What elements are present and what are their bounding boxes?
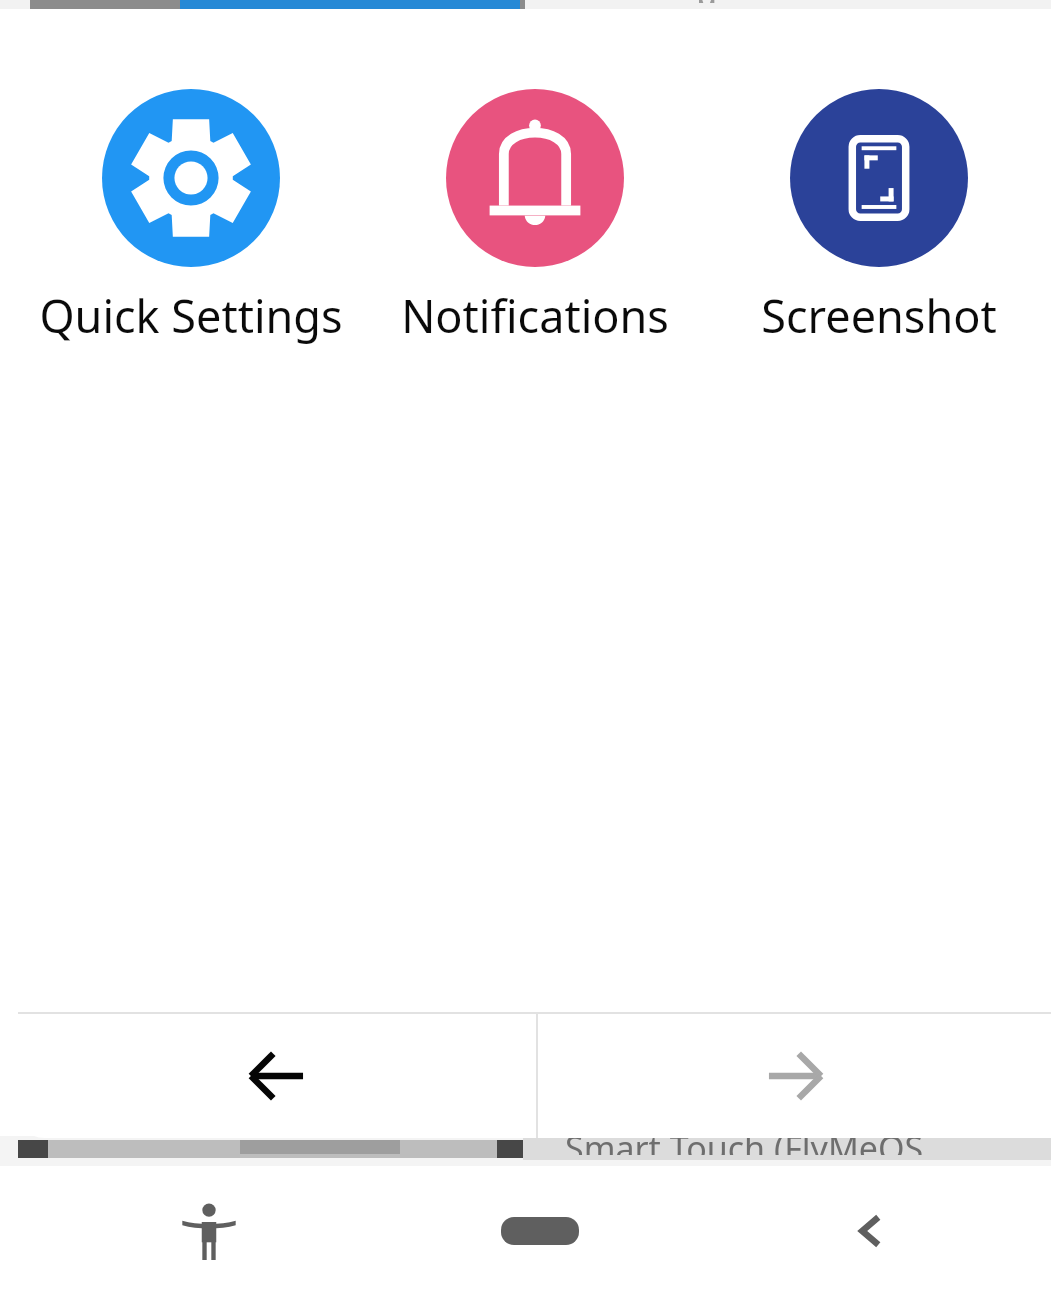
button[interactable]: Quick Settings xyxy=(18,87,363,346)
staticText: Quick Settings xyxy=(39,285,343,346)
button[interactable]: Home xyxy=(465,1166,615,1296)
staticText: Notifications xyxy=(401,285,669,346)
button[interactable]: Accessibility xyxy=(149,1166,269,1296)
button[interactable]: Screenshot xyxy=(707,87,1051,346)
button[interactable]: Forward xyxy=(538,1014,1051,1138)
staticText: More xyxy=(697,0,750,3)
staticText: Smart Touch (FlyMeOS ... xyxy=(565,1125,960,1155)
button[interactable]: Notifications xyxy=(363,87,707,346)
staticText: Screenshot xyxy=(761,285,997,346)
button[interactable]: Back xyxy=(18,1014,536,1138)
button[interactable]: Back xyxy=(810,1166,930,1296)
